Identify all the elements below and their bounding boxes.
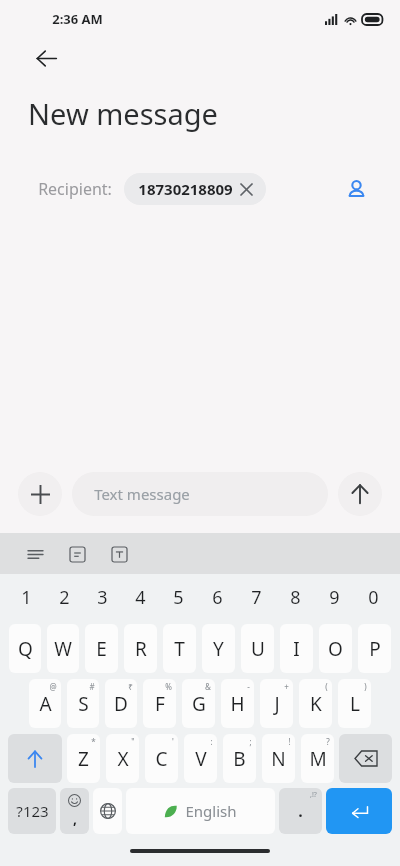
staticText: ; (249, 736, 252, 747)
staticText: F (155, 691, 165, 717)
staticText: 7 (251, 585, 262, 610)
button[interactable]: L (338, 679, 371, 728)
button[interactable]: N (262, 734, 295, 783)
button[interactable]: G (182, 679, 215, 728)
staticText: ?123 (16, 801, 49, 821)
button[interactable]: M (301, 734, 334, 783)
button[interactable]: B (223, 734, 256, 783)
button[interactable]: 7 (237, 574, 276, 621)
button[interactable]: P (358, 624, 391, 673)
staticText: ' (172, 736, 174, 747)
button[interactable]: ?123 (8, 788, 56, 834)
staticText: E (96, 636, 107, 662)
button[interactable]: S (67, 679, 99, 728)
staticText: V (195, 746, 207, 772)
button[interactable]: English (126, 788, 275, 834)
staticText: 8 (290, 585, 301, 610)
button[interactable]: Enter (326, 788, 392, 834)
button[interactable]: 18730218809 (124, 173, 266, 205)
button[interactable]: Z (67, 734, 100, 783)
staticText: ? (326, 736, 330, 747)
button[interactable]: R (124, 624, 157, 673)
staticText: 6 (212, 585, 223, 610)
button[interactable]: 6 (198, 574, 237, 621)
staticText: 18730218809 (138, 179, 233, 199)
staticText: G (192, 691, 206, 717)
button[interactable]: V (184, 734, 217, 783)
button[interactable]: W (47, 624, 79, 673)
staticText: % (165, 681, 172, 692)
button[interactable]: Y (202, 624, 235, 673)
staticText: New message (28, 94, 218, 133)
staticText: P (369, 636, 381, 662)
staticText: S (78, 691, 89, 717)
staticText: A (39, 691, 52, 717)
button[interactable]: H (221, 679, 254, 728)
button[interactable]: . (279, 788, 322, 834)
staticText: W (54, 636, 72, 662)
staticText: I (293, 636, 300, 662)
staticText: X (117, 746, 129, 772)
staticText: ! (288, 736, 291, 747)
button[interactable]: Backspace (339, 734, 392, 783)
button[interactable]: 3 (83, 574, 121, 621)
staticText: & (205, 681, 211, 692)
button[interactable]: A (29, 679, 61, 728)
staticText: R (135, 636, 147, 662)
staticText: # (89, 681, 95, 692)
staticText: 3 (97, 585, 108, 610)
button[interactable]: Send (338, 472, 382, 516)
button[interactable]: Change language (93, 788, 122, 834)
staticText: * (91, 736, 96, 747)
button[interactable]: 5 (159, 574, 198, 621)
button[interactable]: D (105, 679, 137, 728)
button[interactable]: J (260, 679, 293, 728)
button[interactable]: Attach (18, 472, 62, 516)
button[interactable]: C (145, 734, 178, 783)
button[interactable]: 9 (315, 574, 354, 621)
staticText: 0 (368, 585, 379, 610)
button[interactable]: Emoji (60, 788, 89, 834)
staticText: 2:36 AM (52, 10, 103, 28)
staticText: C (155, 746, 168, 772)
staticText: : (210, 736, 213, 747)
button[interactable]: F (143, 679, 176, 728)
button[interactable]: Back (26, 38, 66, 78)
button[interactable]: 4 (121, 574, 159, 621)
staticText: @ (49, 681, 57, 692)
staticText: Text message (94, 484, 190, 504)
button[interactable]: Add contact (336, 169, 376, 209)
button[interactable]: Shift (8, 734, 62, 783)
button[interactable]: X (106, 734, 139, 783)
button[interactable]: 2 (45, 574, 83, 621)
button[interactable]: Clipboard (62, 539, 92, 569)
button[interactable]: O (319, 624, 352, 673)
staticText: Y (213, 636, 224, 662)
staticText: - (247, 681, 250, 692)
staticText: O (328, 636, 343, 662)
button[interactable]: Text message (72, 472, 328, 516)
staticText: " (131, 736, 135, 747)
staticText: Recipient: (38, 178, 112, 200)
button[interactable]: 1 (7, 574, 45, 621)
staticText: English (185, 801, 237, 821)
button[interactable]: U (241, 624, 274, 673)
staticText: D (114, 691, 128, 717)
button[interactable]: E (85, 624, 118, 673)
button[interactable]: I (280, 624, 313, 673)
button[interactable]: Text style (104, 539, 134, 569)
button[interactable]: K (299, 679, 332, 728)
staticText: M (309, 746, 327, 772)
staticText: H (230, 691, 245, 717)
button[interactable]: Q (9, 624, 41, 673)
staticText: L (350, 691, 360, 717)
button[interactable]: Menu (20, 539, 50, 569)
staticText: 4 (135, 585, 146, 610)
staticText: 5 (173, 585, 184, 610)
staticText: ₹ (128, 681, 133, 692)
button[interactable]: 0 (354, 574, 393, 621)
button[interactable]: T (163, 624, 196, 673)
button[interactable]: 8 (276, 574, 315, 621)
staticText: Z (78, 746, 89, 772)
staticText: B (233, 746, 246, 772)
